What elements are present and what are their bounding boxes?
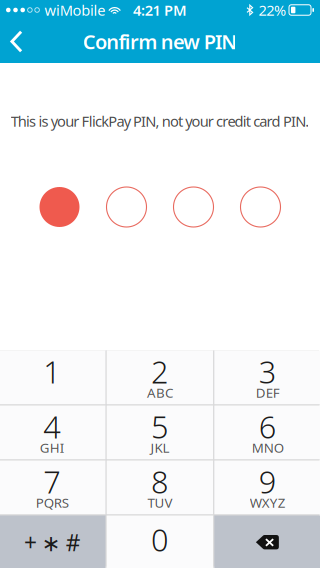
staticText: 7 [43,461,61,502]
button[interactable]: 8 [107,460,213,514]
staticText: JKL [150,439,169,456]
staticText: 9 [259,461,277,502]
staticText: GHI [40,439,65,456]
staticText: PQRS [36,494,69,511]
staticText: 4 [43,406,61,447]
staticText: TUV [147,494,172,511]
button[interactable]: 4 [0,405,106,459]
button[interactable]: 7 [0,460,106,514]
staticText: 3 [259,351,277,392]
button[interactable]: Delete [214,515,320,568]
staticText: 5 [151,406,169,447]
staticText: 8 [151,461,169,502]
staticText: 2 [151,351,169,392]
staticText: 22% [258,0,286,20]
button[interactable]: 1 [0,350,106,404]
button[interactable]: Back [0,20,44,63]
staticText: + ∗ # [24,527,81,557]
button[interactable]: 0 [107,515,213,568]
button[interactable]: 9 [214,460,320,514]
button[interactable]: 5 [107,405,213,459]
staticText: MNO [252,439,284,456]
staticText: 0 [151,519,169,560]
staticText: WXYZ [250,494,286,511]
button[interactable]: Symbols [0,515,106,568]
staticText: wiMobile [44,0,105,20]
button[interactable]: 6 [214,405,320,459]
staticText: Confirm new PIN [83,28,237,55]
staticText: ABC [147,384,173,401]
staticText: 1 [43,351,61,392]
staticText: DEF [256,384,280,401]
button[interactable]: 2 [107,350,213,404]
staticText: This is your FlickPay PIN, not your cred… [11,111,309,131]
staticText: 6 [259,406,277,447]
staticText: 4:21 PM [133,0,187,20]
button[interactable]: 3 [214,350,320,404]
